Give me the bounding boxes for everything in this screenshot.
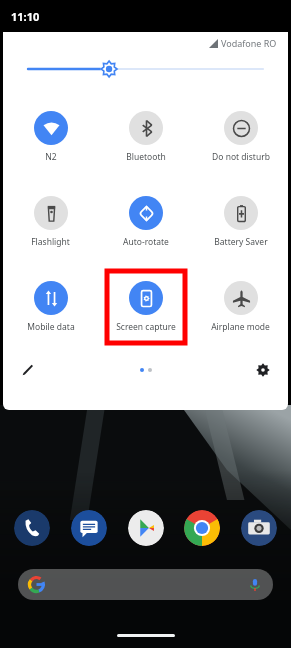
button[interactable]: Flashlight xyxy=(31,196,70,248)
button[interactable]: Airplane mode xyxy=(211,281,270,333)
button[interactable]: Do not disturb xyxy=(212,111,270,163)
staticText: Do not disturb xyxy=(212,151,270,163)
staticText: Mobile data xyxy=(27,321,75,333)
button[interactable]: Play Store xyxy=(128,510,164,546)
button[interactable]: Battery Saver xyxy=(214,196,268,248)
button[interactable]: Settings xyxy=(250,357,276,383)
button[interactable]: Camera xyxy=(241,510,277,546)
button[interactable]: Phone xyxy=(14,510,50,546)
staticText: N2 xyxy=(45,151,57,163)
staticText: Battery Saver xyxy=(214,236,268,248)
button[interactable]: Chrome xyxy=(184,510,220,546)
button[interactable]: N2 xyxy=(34,111,68,163)
staticText: Bluetooth xyxy=(126,151,166,163)
button[interactable]: Edit tiles xyxy=(15,357,41,383)
staticText: Vodafone RO xyxy=(221,37,277,49)
button[interactable]: Bluetooth xyxy=(126,111,166,163)
staticText: Flashlight xyxy=(31,236,70,248)
button[interactable]: Screen capture xyxy=(107,271,185,343)
button[interactable]: Mobile data xyxy=(27,281,75,333)
staticText: Screen capture xyxy=(116,321,176,333)
button[interactable]: Messages xyxy=(71,510,107,546)
staticText: Auto-rotate xyxy=(123,236,169,248)
button[interactable]: Auto-rotate xyxy=(123,196,169,248)
staticText: 11:10 xyxy=(11,9,40,24)
button[interactable]: Brightness xyxy=(28,54,263,84)
staticText: Airplane mode xyxy=(211,321,270,333)
button[interactable]: Search xyxy=(18,569,273,600)
